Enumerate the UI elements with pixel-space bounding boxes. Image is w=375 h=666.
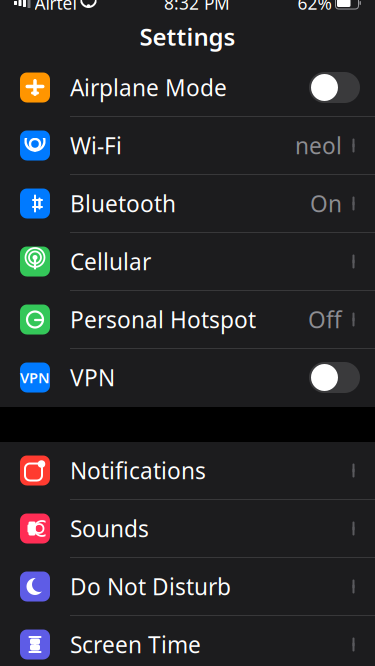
- staticText: Personal Hotspot: [70, 304, 256, 334]
- staticText: On: [310, 188, 342, 218]
- button[interactable]: Personal Hotspot: [0, 291, 375, 349]
- button[interactable]: Wi-Fi: [0, 117, 375, 175]
- staticText: Settings: [139, 21, 235, 52]
- staticText: Off: [308, 304, 342, 334]
- button[interactable]: Do Not Disturb: [0, 558, 375, 616]
- staticText: Notifications: [70, 455, 206, 485]
- staticText: VPN: [20, 368, 50, 387]
- staticText: Wi-Fi: [70, 130, 122, 160]
- button[interactable]: Bluetooth: [0, 175, 375, 233]
- staticText: 62%: [297, 0, 331, 14]
- staticText: Screen Time: [70, 629, 201, 659]
- staticText: Airtel: [34, 0, 76, 14]
- staticText: Bluetooth: [70, 188, 176, 218]
- staticText: neol: [295, 130, 342, 160]
- button[interactable]: Airplane Mode: [0, 59, 375, 117]
- staticText: Do Not Disturb: [70, 571, 231, 601]
- button[interactable]: Sounds: [0, 500, 375, 558]
- staticText: Sounds: [70, 513, 149, 543]
- button[interactable]: Screen Time: [0, 616, 375, 666]
- staticText: Airplane Mode: [70, 72, 227, 102]
- button[interactable]: Notifications: [0, 442, 375, 500]
- staticText: VPN: [70, 362, 115, 392]
- staticText: Cellular: [70, 246, 151, 276]
- staticText: 8:32 PM: [164, 0, 230, 14]
- button[interactable]: VPN: [0, 349, 375, 407]
- button[interactable]: Cellular: [0, 233, 375, 291]
